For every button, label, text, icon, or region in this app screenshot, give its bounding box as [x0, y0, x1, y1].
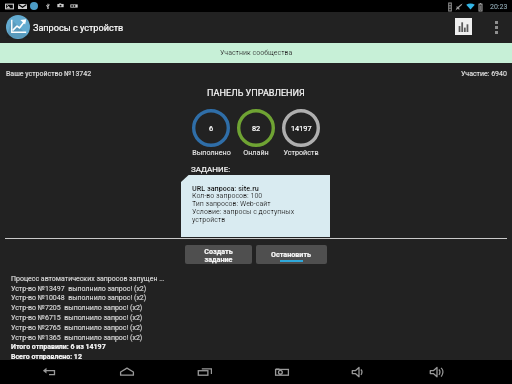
staticText: Устр-во №10048 выполнило запрос! (x2): [11, 294, 147, 302]
button[interactable]: 6: [192, 109, 230, 147]
staticText: Устр-во №1365 выполнило запрос! (x2): [11, 334, 143, 342]
staticText: Кол-во запросов: 100: [192, 192, 263, 200]
staticText: Участник сообщества: [220, 49, 293, 57]
button[interactable]: Скриншот: [264, 360, 300, 384]
staticText: Выполнено: [192, 148, 231, 156]
staticText: URL запроса: site.ru: [192, 184, 259, 192]
button[interactable]: Тише: [341, 360, 377, 384]
button[interactable]: Остановить: [256, 245, 327, 264]
button[interactable]: Громче: [419, 360, 455, 384]
staticText: Тип запросов: Web-сайт: [192, 200, 271, 208]
staticText: 82: [252, 124, 261, 133]
staticText: ЗАДАНИЕ:: [191, 165, 231, 174]
staticText: Процесс автоматических запросов запущен …: [11, 275, 165, 283]
staticText: Ваше устройство №13742: [6, 70, 92, 78]
staticText: Онлайн: [243, 148, 269, 156]
staticText: 14197: [291, 124, 312, 133]
staticText: Всего отправлено: 12: [11, 353, 82, 361]
button[interactable]: 14197: [282, 109, 320, 147]
button[interactable]: Создать задание: [185, 245, 252, 264]
staticText: Итого отправили: 6 из 14197: [11, 343, 106, 351]
staticText: Устройств: [283, 148, 319, 156]
button[interactable]: 82: [237, 109, 275, 147]
button[interactable]: Статистика: [455, 18, 472, 35]
button[interactable]: Назад: [32, 360, 68, 384]
staticText: Участие: 6940: [461, 70, 507, 78]
staticText: Создать задание: [204, 247, 233, 263]
staticText: Устр-во №2765 выполнило запрос! (x2): [11, 324, 143, 332]
staticText: ПАНЕЛЬ УПРАВЛЕНИЯ: [0, 88, 512, 99]
staticText: 20:23: [490, 3, 508, 11]
staticText: Остановить: [271, 250, 312, 258]
staticText: Устр-во №13497 выполнило запрос! (x2): [11, 285, 147, 293]
staticText: 6: [209, 124, 214, 133]
button[interactable]: Последние приложения: [187, 360, 223, 384]
staticText: Запросы с устройств: [33, 23, 124, 34]
button[interactable]: Домой: [109, 360, 145, 384]
staticText: Условие: запросы с доступных устройств: [192, 208, 295, 224]
button[interactable]: Ещё: [487, 12, 506, 43]
staticText: Устр-во №6715 выполнило запрос! (x2): [11, 314, 143, 322]
staticText: Устр-во №7205 выполнило запрос! (x2): [11, 304, 143, 312]
